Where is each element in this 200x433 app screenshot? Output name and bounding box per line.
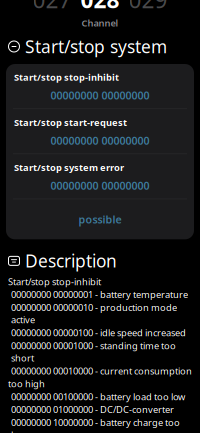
staticText: Start/stop system error [14, 161, 124, 173]
staticText: 00000000 01000000 - DC/DC-converter [11, 403, 174, 416]
button[interactable]: 029 [128, 0, 167, 15]
staticText: 028 [80, 0, 119, 15]
staticText: Start/stop stop-inhibit [14, 71, 119, 83]
staticText: Start/stop start-request [14, 116, 127, 128]
staticText: 00000000 10000000 - battery charge too l… [11, 416, 180, 433]
staticText: 00000000 00001000 - standing time too sh… [11, 339, 176, 364]
staticText: 00000000 00000010 - production mode acti… [11, 301, 177, 326]
staticText: 00000000 00100000 - battery load too low [11, 390, 185, 403]
staticText: possible [78, 212, 121, 226]
staticText: 00000000 00000000 [50, 178, 149, 193]
button[interactable]: 027 [32, 0, 71, 15]
staticText: 00000000 00010000 - current consumption [11, 365, 192, 377]
staticText: Start/stop stop-inhibit [8, 275, 101, 288]
staticText: 029 [128, 0, 167, 15]
staticText: Start/stop system [25, 35, 167, 58]
staticText: 00000000 00000000 [50, 88, 149, 103]
staticText: too high [8, 377, 45, 390]
staticText: 00000000 00000000 [50, 133, 149, 148]
staticText: Description [25, 249, 117, 272]
button[interactable]: 028 [80, 0, 119, 15]
staticText: 027 [32, 0, 71, 15]
staticText: 00000000 00000100 - idle speed increased [11, 326, 186, 339]
staticText: 00000000 00000001 - battery temperature [11, 288, 188, 301]
staticText: Channel [81, 17, 118, 29]
